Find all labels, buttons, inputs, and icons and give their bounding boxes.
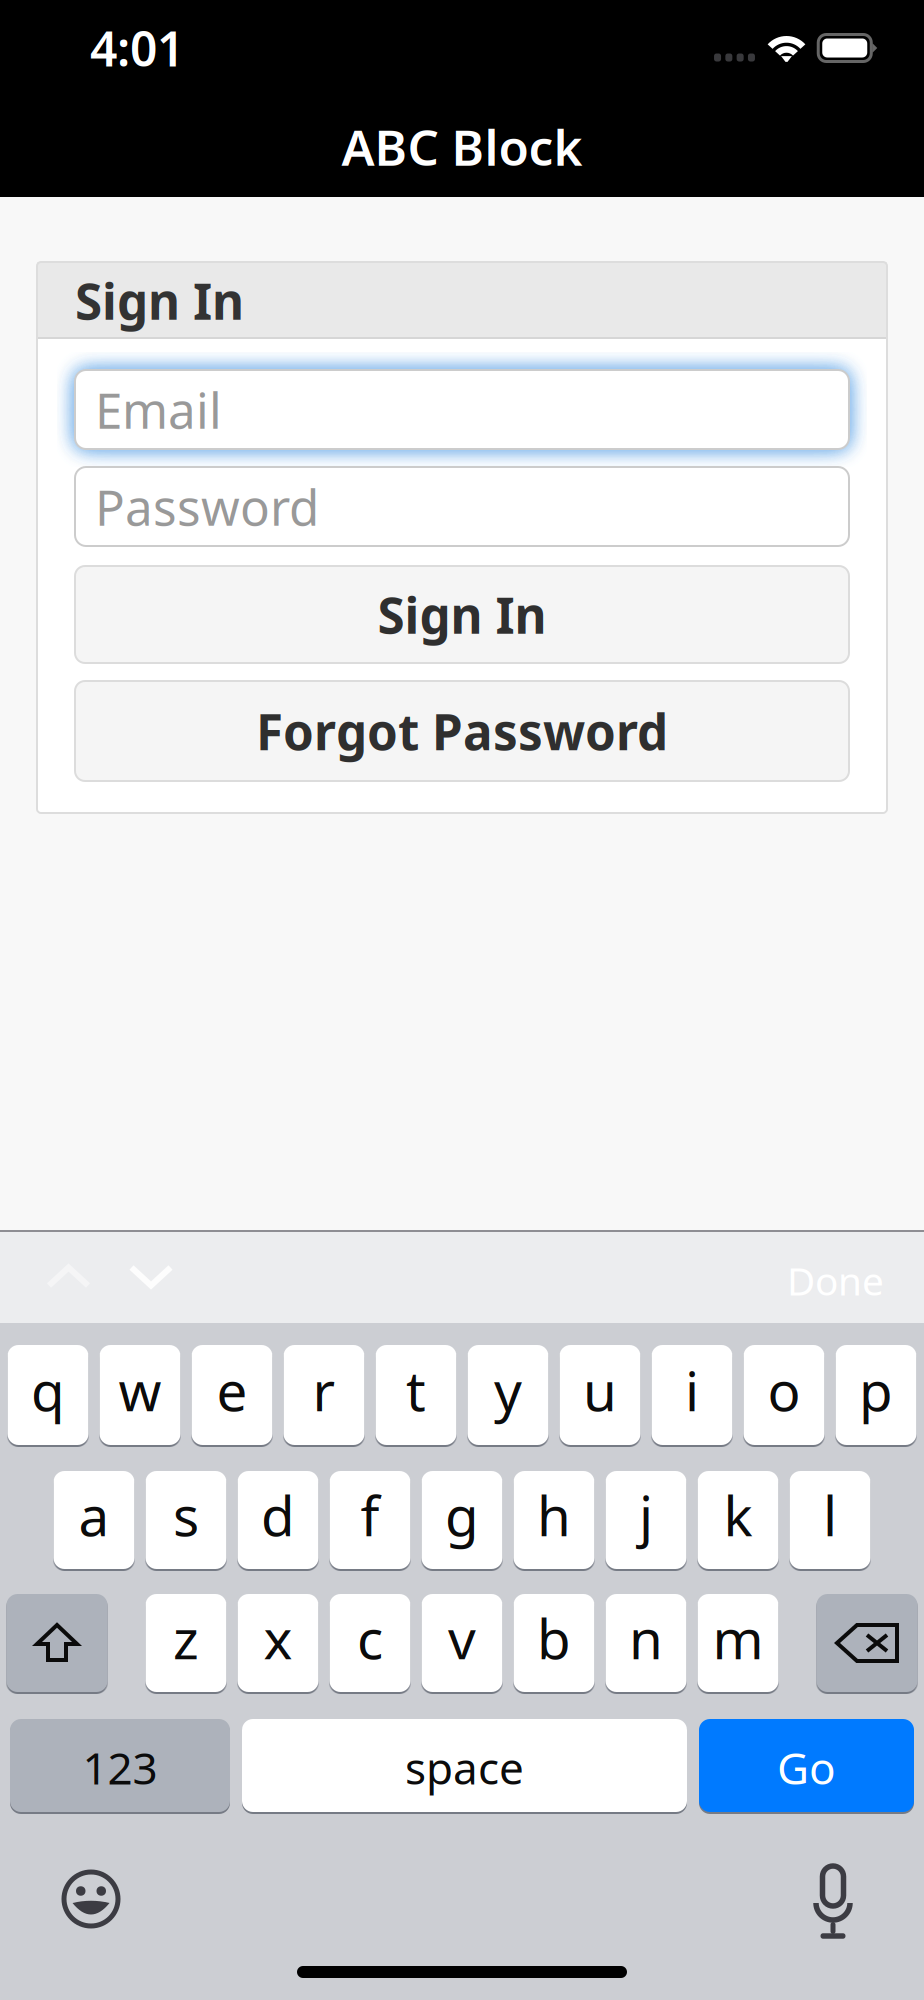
button[interactable]: l bbox=[789, 1471, 870, 1569]
button[interactable]: Emoji keyboard bbox=[52, 1860, 130, 1938]
button[interactable]: Delete bbox=[816, 1594, 917, 1692]
button[interactable]: space bbox=[242, 1719, 687, 1812]
button[interactable]: Password bbox=[75, 467, 849, 546]
staticText: r bbox=[312, 1354, 335, 1426]
button[interactable]: f bbox=[329, 1471, 410, 1569]
button[interactable]: k bbox=[697, 1471, 778, 1569]
button[interactable]: Shift bbox=[6, 1594, 107, 1692]
button[interactable]: c bbox=[329, 1594, 410, 1692]
staticText: s bbox=[173, 1479, 199, 1551]
staticText: Go bbox=[777, 1738, 836, 1797]
button[interactable]: z bbox=[145, 1594, 226, 1692]
staticText: a bbox=[78, 1479, 109, 1551]
button[interactable]: Forgot Password bbox=[75, 681, 849, 781]
button[interactable]: i bbox=[651, 1345, 732, 1445]
staticText: n bbox=[629, 1602, 663, 1674]
button[interactable]: d bbox=[237, 1471, 318, 1569]
staticText: i bbox=[685, 1354, 699, 1426]
staticText: o bbox=[767, 1354, 800, 1426]
button[interactable]: s bbox=[145, 1471, 226, 1569]
button[interactable]: o bbox=[743, 1345, 824, 1445]
button[interactable]: Done bbox=[767, 1230, 904, 1323]
button[interactable]: n bbox=[605, 1594, 686, 1692]
staticText: y bbox=[494, 1354, 522, 1426]
staticText: z bbox=[173, 1602, 199, 1674]
staticText: g bbox=[445, 1479, 479, 1551]
button[interactable]: u bbox=[559, 1345, 640, 1445]
staticText: d bbox=[261, 1479, 295, 1551]
button[interactable]: r bbox=[283, 1345, 364, 1445]
button[interactable]: w bbox=[99, 1345, 180, 1445]
button[interactable]: b bbox=[513, 1594, 594, 1692]
staticText: c bbox=[357, 1602, 383, 1674]
staticText: ABC Block bbox=[341, 114, 582, 179]
button[interactable]: x bbox=[237, 1594, 318, 1692]
staticText: p bbox=[859, 1354, 893, 1426]
staticText: e bbox=[216, 1354, 247, 1426]
staticText: q bbox=[31, 1354, 65, 1426]
staticText: 4:01 bbox=[90, 16, 184, 80]
button[interactable]: v bbox=[421, 1594, 502, 1692]
staticText: u bbox=[583, 1354, 617, 1426]
button[interactable]: Email bbox=[75, 370, 849, 449]
button[interactable]: Sign In bbox=[75, 566, 849, 663]
button[interactable]: m bbox=[697, 1594, 778, 1692]
button[interactable]: Go bbox=[699, 1719, 914, 1812]
button[interactable]: a bbox=[53, 1471, 134, 1569]
button[interactable]: j bbox=[605, 1471, 686, 1569]
staticText: t bbox=[406, 1354, 426, 1426]
staticText: k bbox=[723, 1479, 752, 1551]
staticText: j bbox=[639, 1479, 653, 1551]
staticText: v bbox=[448, 1602, 476, 1674]
staticText: h bbox=[537, 1479, 571, 1551]
button[interactable]: e bbox=[191, 1345, 272, 1445]
staticText: Email bbox=[95, 377, 222, 442]
staticText: Sign In bbox=[377, 582, 546, 647]
staticText: b bbox=[537, 1602, 571, 1674]
staticText: x bbox=[263, 1602, 292, 1674]
staticText: m bbox=[712, 1602, 763, 1674]
staticText: Sign In bbox=[75, 268, 244, 333]
button[interactable]: 123 bbox=[10, 1719, 230, 1812]
button[interactable]: p bbox=[835, 1345, 916, 1445]
staticText: w bbox=[118, 1354, 161, 1426]
button[interactable]: h bbox=[513, 1471, 594, 1569]
button[interactable]: Previous field bbox=[27, 1230, 110, 1323]
button[interactable]: q bbox=[7, 1345, 88, 1445]
staticText: space bbox=[405, 1738, 524, 1797]
button[interactable]: Next field bbox=[110, 1230, 192, 1323]
staticText: f bbox=[360, 1479, 379, 1551]
button[interactable]: t bbox=[375, 1345, 456, 1445]
staticText: 123 bbox=[82, 1738, 157, 1797]
staticText: Forgot Password bbox=[256, 698, 668, 764]
staticText: l bbox=[823, 1479, 837, 1551]
staticText: Done bbox=[787, 1255, 884, 1306]
staticText: Password bbox=[95, 474, 319, 539]
button[interactable]: g bbox=[421, 1471, 502, 1569]
button[interactable]: Dictation bbox=[794, 1860, 872, 1938]
button[interactable]: y bbox=[467, 1345, 548, 1445]
